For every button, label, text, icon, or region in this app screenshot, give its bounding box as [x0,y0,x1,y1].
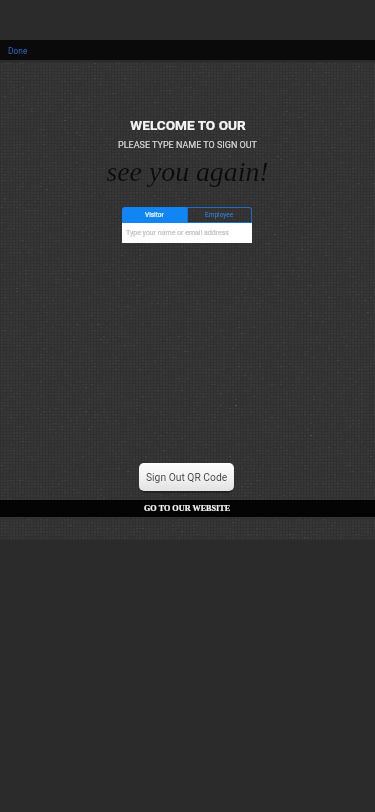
button[interactable]: Done [0,40,36,60]
staticText: GO TO OUR WEBSITE [144,504,231,513]
button[interactable]: Sign Out QR Code [139,463,234,491]
button[interactable]: Type your name or email address [122,223,252,243]
button[interactable]: Employee [187,207,252,223]
staticText: Done [8,46,28,56]
staticText: Visitor [145,211,164,219]
staticText: WELCOME TO OUR [130,117,246,133]
staticText: PLEASE TYPE NAME TO SIGN OUT [118,140,257,151]
button[interactable]: Visitor [122,207,187,223]
staticText: Sign Out QR Code [146,471,228,483]
staticText: Employee [205,211,234,219]
staticText: Type your name or email address [126,229,229,237]
button[interactable]: GO TO OUR WEBSITE [0,500,375,517]
staticText: see you again! [106,156,269,187]
